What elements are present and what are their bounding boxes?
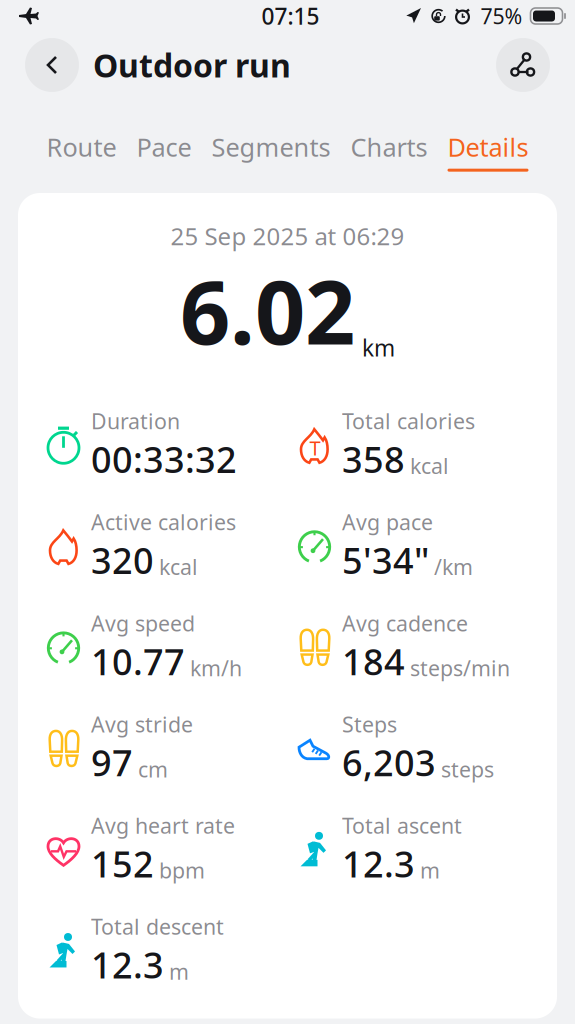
staticText: kcal [410, 451, 449, 480]
staticText: /km [434, 553, 473, 581]
button[interactable]: Share [496, 38, 550, 92]
staticText: Total calories [342, 407, 475, 435]
staticText: Avg stride [91, 710, 193, 738]
staticText: 00:33:32 [91, 435, 237, 483]
staticText: Active calories [91, 508, 236, 536]
button[interactable]: Charts [350, 130, 427, 172]
staticText: 6,203 [342, 738, 436, 786]
button[interactable]: Details [447, 130, 528, 172]
staticText: 12.3 [342, 840, 415, 887]
staticText: cm [138, 755, 168, 783]
button[interactable]: Segments [211, 130, 330, 172]
staticText: km [362, 333, 395, 363]
staticText: 10.77 [91, 637, 185, 685]
staticText: 25 Sep 2025 at 06:29 [170, 220, 404, 252]
staticText: Avg speed [91, 609, 195, 637]
staticText: Avg cadence [342, 609, 468, 637]
staticText: steps [441, 755, 494, 783]
button[interactable]: Pace [136, 130, 191, 172]
staticText: kcal [159, 553, 198, 581]
staticText: Duration [91, 407, 180, 435]
staticText: 5'34" [342, 536, 429, 584]
staticText: Avg heart rate [91, 811, 235, 840]
staticText: km/h [190, 654, 242, 682]
staticText: steps/min [410, 654, 510, 682]
staticText: 12.3 [91, 941, 164, 988]
staticText: Total descent [91, 912, 224, 941]
staticText: 184 [342, 637, 405, 685]
staticText: 75% [480, 2, 522, 30]
staticText: Pace [136, 130, 191, 164]
staticText: Details [447, 130, 528, 164]
staticText: Outdoor run [93, 44, 291, 86]
staticText: 97 [91, 738, 133, 786]
staticText: Route [46, 130, 116, 164]
staticText: bpm [159, 856, 205, 884]
staticText: Segments [211, 130, 330, 164]
staticText: 6.02 [180, 252, 355, 369]
staticText: m [420, 856, 440, 884]
button[interactable]: Back [25, 38, 79, 92]
staticText: 320 [91, 536, 154, 584]
staticText: Total ascent [342, 811, 462, 840]
staticText: T [309, 434, 320, 461]
staticText: Steps [342, 710, 397, 738]
button[interactable]: Route [46, 130, 116, 172]
staticText: 358 [342, 435, 405, 483]
staticText: 07:15 [261, 1, 319, 31]
staticText: Avg pace [342, 508, 433, 536]
staticText: 152 [91, 840, 154, 887]
staticText: m [169, 957, 189, 985]
staticText: Charts [350, 130, 427, 164]
